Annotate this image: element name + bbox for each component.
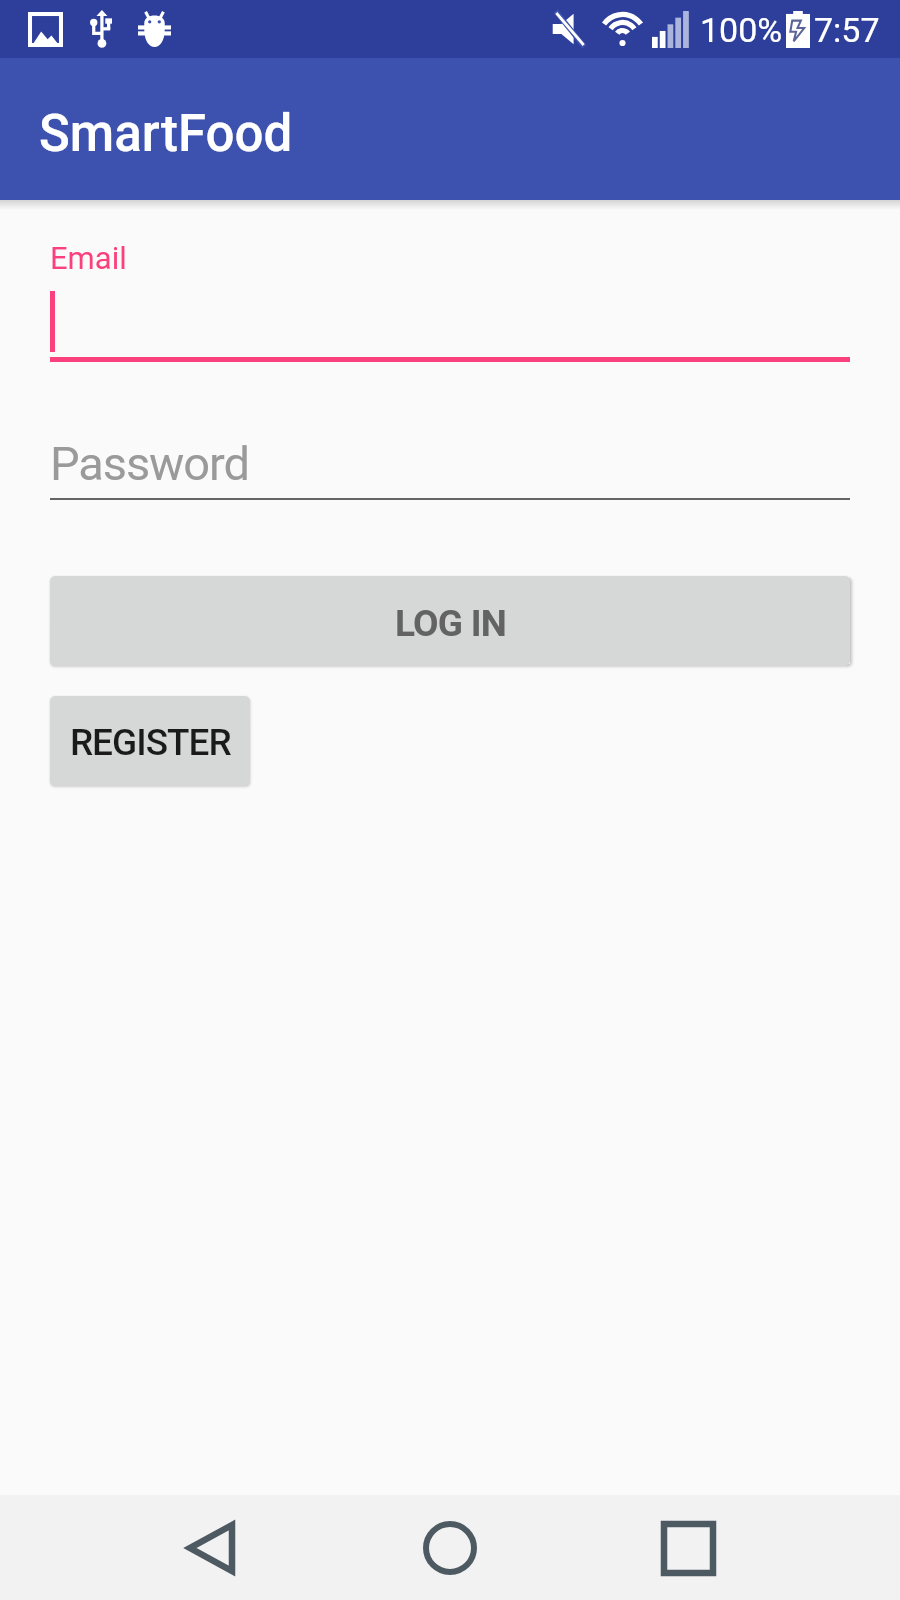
staticText: LOG IN <box>395 602 506 645</box>
button[interactable]: Password <box>50 436 850 500</box>
staticText: 7:57 <box>814 10 880 50</box>
staticText: Password <box>50 436 249 491</box>
staticText: 100% <box>700 10 783 50</box>
button[interactable]: LOG IN <box>50 576 850 666</box>
button[interactable]: REGISTER <box>50 696 250 786</box>
staticText: SmartFood <box>39 104 293 164</box>
button[interactable]: Home <box>370 1495 530 1600</box>
button[interactable]: Recent apps <box>608 1495 768 1600</box>
button[interactable]: Email <box>50 233 850 362</box>
staticText: Email <box>50 240 127 276</box>
staticText: REGISTER <box>70 721 231 764</box>
button[interactable]: Back <box>131 1495 291 1600</box>
